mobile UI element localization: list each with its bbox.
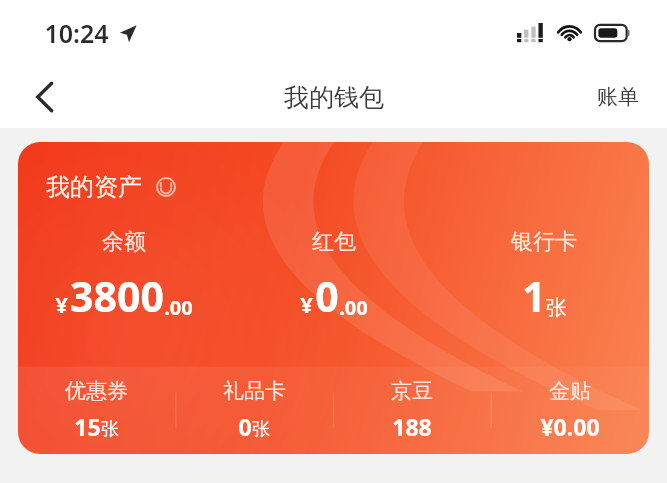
button[interactable]: 金贴 (491, 366, 649, 454)
staticText: 0 (238, 411, 252, 442)
staticText: 3800 (70, 268, 164, 324)
staticText: 余额 (102, 228, 146, 256)
staticText: 0 (315, 268, 339, 324)
staticText: 1 (522, 268, 546, 324)
staticText: 张 (252, 418, 270, 441)
button[interactable]: 银行卡 (439, 228, 649, 324)
staticText: 账单 (597, 84, 639, 110)
staticText: ¥0.00 (540, 411, 600, 442)
staticText: ¥ (300, 289, 313, 319)
button[interactable]: 我的资产 (18, 142, 649, 454)
staticText: 金贴 (549, 378, 591, 404)
button[interactable]: 余额 (18, 228, 229, 324)
staticText: 红包 (312, 228, 356, 256)
staticText: 张 (101, 418, 119, 441)
staticText: 礼品卡 (223, 378, 286, 404)
staticText: 京豆 (391, 378, 433, 404)
staticText: 张 (546, 295, 567, 321)
button[interactable]: 京豆 (333, 366, 491, 454)
button[interactable]: 我的资产 (46, 172, 178, 202)
button[interactable]: 红包 (229, 228, 439, 324)
button[interactable]: 优惠券 (18, 366, 175, 454)
other: Hide amounts (154, 175, 178, 199)
staticText: .00 (164, 294, 193, 321)
staticText: ¥ (55, 289, 68, 319)
staticText: 188 (392, 411, 432, 442)
staticText: 我的钱包 (284, 82, 384, 113)
button[interactable]: 礼品卡 (175, 366, 333, 454)
staticText: 优惠券 (65, 378, 128, 404)
staticText: 银行卡 (511, 228, 577, 256)
staticText: .00 (339, 294, 368, 321)
staticText: 10:24 (44, 16, 109, 50)
staticText: 我的资产 (46, 172, 142, 202)
staticText: 15 (74, 411, 101, 442)
button[interactable]: 账单 (591, 76, 645, 118)
button[interactable]: Back (20, 73, 68, 121)
